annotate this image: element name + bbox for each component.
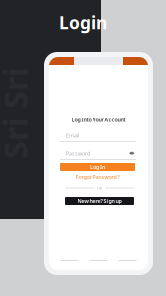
button[interactable]: New here? Sign up [65,197,134,205]
staticText: Login [59,11,107,34]
staticText: Password [66,150,90,157]
button[interactable]: Log In [60,163,135,171]
staticText: OR [97,185,102,191]
staticText: New here? Sign up [77,197,121,205]
button[interactable]: Forgot Password ? [60,174,135,180]
staticText: Sri Sri [0,92,61,134]
staticText: Log Into Your Account [71,116,125,123]
staticText: Email [66,132,79,139]
staticText: Log In [90,163,105,171]
staticText: Forgot Password ? [75,173,119,181]
